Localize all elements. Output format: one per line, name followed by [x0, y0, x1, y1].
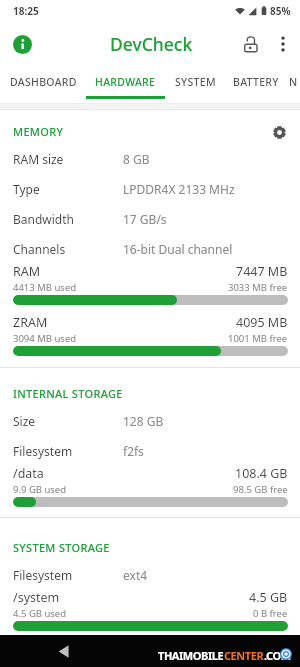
button[interactable]: Filesystem [0, 560, 300, 590]
staticText: Size [13, 413, 123, 429]
staticText: 17 GB/s [123, 211, 167, 227]
staticText: 85% [270, 4, 291, 18]
staticText: DASHBOARD [10, 75, 77, 89]
staticText: /data [13, 465, 235, 482]
button[interactable]: Type [0, 174, 300, 204]
button[interactable]: Size [0, 406, 300, 436]
button[interactable]: Memory settings [267, 120, 291, 144]
staticText: 3094 MB used [13, 332, 228, 345]
button[interactable]: RAM size [0, 144, 300, 174]
staticText: Bandwidth [13, 211, 123, 227]
button[interactable]: Unlock [231, 26, 266, 62]
staticText: .COM [264, 648, 291, 663]
button[interactable]: App info [9, 31, 36, 58]
staticText: 3033 MB free [228, 281, 288, 294]
staticText: f2fs [123, 443, 144, 459]
staticText: LPDDR4X 2133 MHz [123, 181, 235, 197]
button[interactable]: RAM [0, 264, 300, 315]
button[interactable]: HARDWARE [86, 66, 165, 104]
staticText: 108.4 GB [235, 465, 288, 482]
staticText: 8 GB [123, 151, 150, 167]
button[interactable]: /system [0, 590, 300, 635]
staticText: 4413 MB used [13, 281, 228, 294]
staticText: 0 B free [253, 607, 288, 620]
staticText: 1001 MB free [228, 332, 288, 345]
other: Copyright [280, 648, 292, 660]
staticText: N [289, 75, 298, 89]
button[interactable]: Channels [0, 234, 300, 264]
staticText: MEMORY [13, 124, 64, 139]
staticText: 16-bit Dual channel [123, 241, 233, 257]
staticText: HARDWARE [95, 75, 156, 89]
staticText: Channels [13, 241, 123, 257]
staticText: 4.5 GB [249, 589, 288, 606]
button[interactable]: N [286, 66, 300, 104]
staticText: /system [13, 589, 249, 606]
button[interactable]: Filesystem [0, 436, 300, 466]
staticText: THAIMOBILE [158, 648, 224, 663]
staticText: ext4 [123, 567, 148, 583]
staticText: SYSTEM [175, 75, 216, 89]
staticText: 4.5 GB used [13, 607, 253, 620]
staticText: 18:25 [13, 4, 39, 18]
staticText: 128 GB [123, 413, 164, 429]
staticText: Filesystem [13, 443, 123, 459]
staticText: BATTERY [233, 75, 279, 89]
staticText: RAM size [13, 151, 123, 167]
button[interactable]: BATTERY [225, 66, 286, 104]
staticText: DevCheck [110, 32, 193, 56]
staticText: Type [13, 181, 123, 197]
staticText: 4095 MB [236, 314, 288, 331]
staticText: RAM [13, 263, 236, 280]
staticText: 7447 MB [236, 263, 288, 280]
staticText: Filesystem [13, 567, 123, 583]
button[interactable]: More options [266, 26, 300, 62]
staticText: CENTER [224, 648, 264, 663]
staticText: SYSTEM STORAGE [13, 540, 110, 555]
staticText: 9.9 GB used [13, 483, 233, 496]
button[interactable]: ZRAM [0, 315, 300, 366]
button[interactable]: Bandwidth [0, 204, 300, 234]
button[interactable]: Back [48, 636, 78, 666]
button[interactable]: /data [0, 466, 300, 517]
staticText: ZRAM [13, 314, 236, 331]
staticText: INTERNAL STORAGE [13, 386, 123, 401]
button[interactable]: SYSTEM [165, 66, 225, 104]
button[interactable]: DASHBOARD [0, 66, 86, 104]
staticText: 98.5 GB free [233, 483, 288, 496]
